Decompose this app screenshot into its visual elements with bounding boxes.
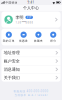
staticText: 9:41 [27, 1, 34, 4]
staticText: 收藏夹 [34, 39, 43, 42]
staticText: 当前版本 v2.4.1 (2024) [14, 93, 47, 97]
staticText: 消息通知 [4, 67, 20, 72]
button[interactable]: 我的订单 [1, 32, 16, 42]
staticText: VIP [27, 16, 32, 19]
staticText: 138****8888 [15, 21, 33, 24]
staticText: 优惠券 [19, 39, 28, 42]
staticText: 李明 [15, 15, 23, 20]
staticText: 我的订单 [3, 39, 15, 42]
staticText: 客服热线 400-000-0000 [13, 89, 48, 93]
button[interactable]: 消息通知 [1, 65, 61, 73]
button[interactable]: 收藏夹 [31, 32, 46, 42]
staticText: 积分 [50, 39, 56, 42]
button[interactable]: 账户安全 [1, 57, 61, 65]
staticText: 关于我们 [4, 75, 20, 80]
button[interactable]: 地址管理 [1, 49, 61, 57]
staticText: 中国移动 [6, 1, 18, 4]
button[interactable]: 关于我们 [1, 74, 61, 82]
staticText: 个人中心 [23, 5, 39, 10]
button[interactable]: 积分 [46, 32, 61, 42]
staticText: 地址管理 [4, 50, 20, 55]
staticText: 账户安全 [4, 59, 20, 63]
button[interactable]: 优惠券 [16, 32, 31, 42]
button[interactable]: 李明 [1, 12, 61, 28]
